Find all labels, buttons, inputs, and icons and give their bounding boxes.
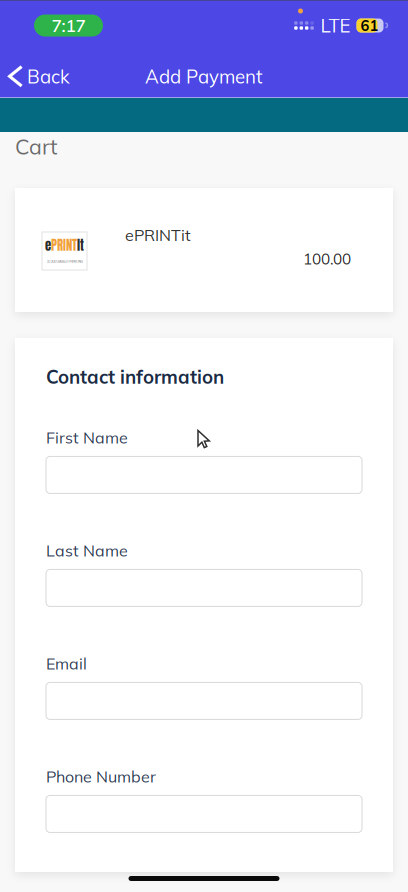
staticText: it	[77, 236, 84, 255]
staticText: First Name	[46, 427, 128, 447]
staticText: e	[45, 236, 51, 255]
staticText: 7:17	[51, 15, 85, 36]
staticText: LTE	[320, 14, 350, 37]
button[interactable]	[46, 456, 362, 493]
staticText: Add Payment	[145, 65, 263, 88]
staticText: Email	[46, 653, 87, 673]
staticText: PRINT	[51, 236, 77, 255]
staticText: Back	[27, 65, 70, 88]
staticText: Cart	[15, 133, 57, 160]
button[interactable]	[46, 569, 362, 606]
staticText: 61	[360, 16, 378, 35]
staticText: CLOUD BASED PRINTING	[46, 259, 82, 264]
staticText: Contact information	[46, 365, 224, 388]
staticText: Phone Number	[46, 766, 156, 786]
button[interactable]	[46, 682, 362, 719]
staticText: ePRINTit	[125, 225, 191, 245]
button[interactable]	[46, 795, 362, 832]
button[interactable]: Back	[0, 59, 78, 94]
staticText: 100.00	[303, 249, 351, 268]
staticText: Last Name	[46, 540, 128, 560]
